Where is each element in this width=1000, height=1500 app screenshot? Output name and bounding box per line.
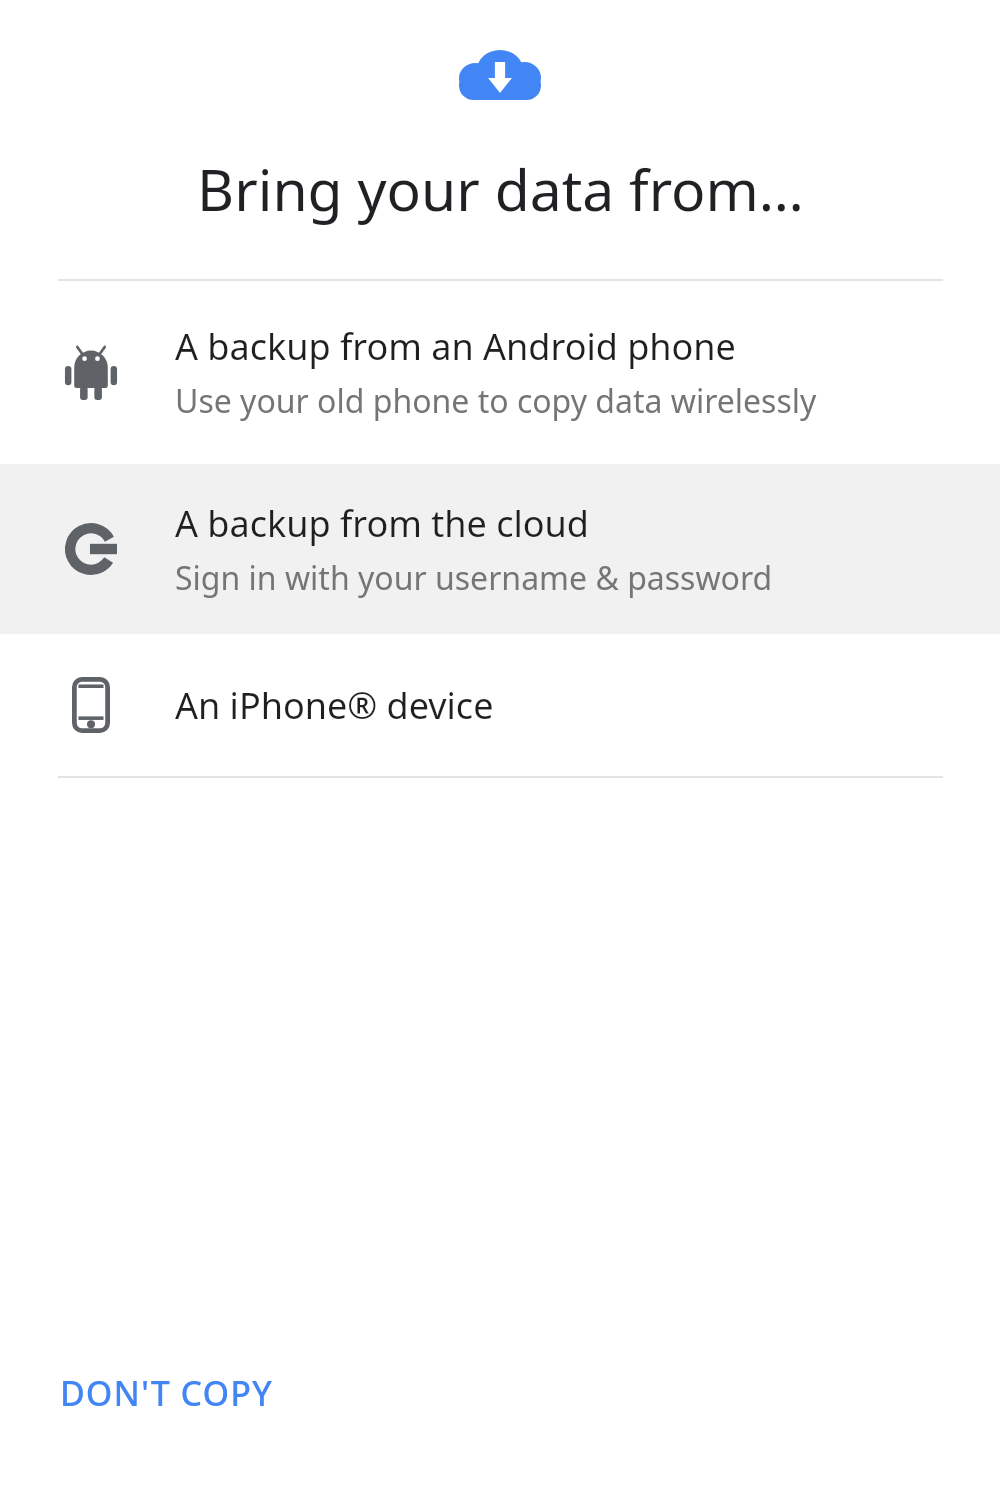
staticText: A backup from an Android phone	[175, 322, 736, 371]
staticText: A backup from the cloud	[175, 499, 589, 548]
staticText: DON'T COPY	[60, 1370, 273, 1416]
button[interactable]: A backup from an Android phone	[0, 281, 1000, 464]
staticText: An iPhone® device	[175, 681, 494, 730]
staticText: Use your old phone to copy data wireless…	[175, 379, 817, 423]
button[interactable]: DON'T COPY	[36, 1356, 297, 1430]
staticText: Sign in with your username & password	[175, 556, 773, 600]
button[interactable]: A backup from the cloud	[0, 464, 1000, 634]
button[interactable]: An iPhone® device	[0, 634, 1000, 776]
staticText: Bring your data from…	[197, 150, 804, 228]
